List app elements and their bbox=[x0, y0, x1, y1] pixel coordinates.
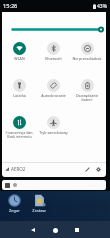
staticText: AERO2 bbox=[11, 166, 26, 172]
button[interactable]: Bluetooth bbox=[36, 42, 70, 78]
staticText: Tryb samolotowy bbox=[39, 130, 68, 135]
staticText: Latarka bbox=[13, 93, 26, 98]
staticText: 43% bbox=[97, 3, 107, 10]
staticText: WLAN bbox=[14, 56, 25, 61]
button[interactable]: Autoobracanie bbox=[36, 79, 70, 115]
button[interactable]: Tryb samolotowy bbox=[36, 116, 70, 152]
button[interactable]: WLAN bbox=[2, 42, 36, 78]
button[interactable]: Oszczędzanie baterii bbox=[70, 79, 104, 115]
button[interactable]: Edit tiles bbox=[83, 165, 92, 174]
button[interactable]: Back bbox=[25, 222, 41, 238]
staticText: Zegar bbox=[9, 208, 20, 213]
staticText: Nie przeszkadzać bbox=[72, 56, 102, 61]
staticText: 15:26 bbox=[3, 2, 18, 10]
button[interactable]: Zestaw na… bbox=[28, 194, 50, 213]
staticText: Zestaw na… bbox=[28, 208, 50, 213]
staticText: Oszczędzanie baterii bbox=[70, 93, 104, 103]
button[interactable]: Home bbox=[47, 222, 63, 238]
button[interactable]: Nie przeszkadzać bbox=[70, 42, 104, 78]
staticText: Autoobracanie bbox=[41, 93, 66, 98]
staticText: I transmisja dan. Brak internetu bbox=[5, 130, 34, 140]
button[interactable]: Recent apps bbox=[69, 222, 85, 238]
button[interactable]: I transmisja dan. Brak internetu bbox=[2, 116, 36, 152]
staticText: Bluetooth bbox=[45, 56, 62, 61]
button[interactable] bbox=[2, 180, 106, 190]
button[interactable]: Zegar bbox=[3, 194, 25, 213]
button[interactable]: Latarka bbox=[2, 79, 36, 115]
button[interactable]: Settings bbox=[94, 165, 103, 174]
